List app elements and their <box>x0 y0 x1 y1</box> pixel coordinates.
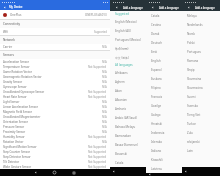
button[interactable]: Step Detector Sensor <box>0 154 110 159</box>
button[interactable]: Eesti <box>146 47 182 56</box>
staticText: Tieng Viet <box>187 113 201 117</box>
button[interactable]: Basaa (Kamerun) <box>110 140 146 149</box>
staticText: Not Supported <box>88 90 107 94</box>
staticText: Islenska <box>151 140 162 144</box>
button[interactable]: Cestina <box>146 20 182 29</box>
button[interactable]: Zulu <box>182 128 220 137</box>
button[interactable]: Significant Motion Sensor <box>0 144 110 149</box>
button[interactable]: Wifi <box>0 28 110 35</box>
button[interactable]: Filipino <box>146 83 182 92</box>
button[interactable]: Home <box>52 170 57 175</box>
button[interactable]: Proximity Sensor <box>0 129 110 134</box>
staticText: Temperature Sensor <box>3 65 30 69</box>
button[interactable]: Back <box>150 5 155 10</box>
button[interactable]: Indonesia <box>146 128 182 137</box>
button[interactable]: Uncalibrated Magnetometer <box>0 114 110 119</box>
button[interactable]: Akan <box>110 86 146 95</box>
button[interactable]: Romana <box>182 56 220 65</box>
button[interactable]: OnePlus <box>0 10 110 19</box>
button[interactable]: Back <box>33 170 38 175</box>
button[interactable]: Geomagnetic Rotation Vector <box>0 74 110 79</box>
button[interactable]: Svenska <box>182 101 220 110</box>
button[interactable]: Gravity Sensor <box>0 79 110 84</box>
button[interactable]: Portugues (Mexico) <box>110 35 146 44</box>
staticText: Humidity Sensor <box>3 135 25 139</box>
button[interactable]: Carrier <box>0 44 110 50</box>
button[interactable]: Hrvatski <box>146 119 182 128</box>
button[interactable]: Norsk <box>182 29 220 38</box>
button[interactable]: Bamanakan <box>110 131 146 140</box>
staticText: हिन्दी (भारत) <box>115 47 129 51</box>
staticText: Add a language <box>159 6 179 10</box>
button[interactable]: Magnetic Field Sensor <box>0 109 110 114</box>
staticText: srbijanski <box>187 140 200 144</box>
button[interactable]: Linear Acceleration Sensor <box>0 104 110 109</box>
button[interactable]: Heart Rate Sensor <box>0 94 110 99</box>
button[interactable]: Euskara <box>146 74 182 83</box>
button[interactable]: Recents <box>71 170 76 175</box>
button[interactable]: Dansk <box>146 29 182 38</box>
button[interactable]: Afrikaans <box>110 68 146 77</box>
button[interactable]: Catala <box>110 158 146 167</box>
button[interactable]: Amharic <box>110 104 146 113</box>
button[interactable]: Catala <box>146 11 182 20</box>
button[interactable]: Turkce <box>182 119 220 128</box>
button[interactable]: 中文 (简体) <box>110 53 146 62</box>
button[interactable]: Islenska <box>146 137 182 146</box>
button[interactable]: Galego <box>146 110 182 119</box>
button[interactable]: Back <box>147 173 152 176</box>
button[interactable]: English (Mexico) <box>110 17 146 26</box>
button[interactable]: Back <box>114 5 119 10</box>
button[interactable]: Step Counter Sensor <box>0 149 110 154</box>
button[interactable]: Acceleration Sensor <box>0 59 110 64</box>
button[interactable]: Kiswahili <box>146 155 182 164</box>
button[interactable]: Deutsch <box>146 38 182 47</box>
button[interactable]: Gaeilge <box>146 101 182 110</box>
button[interactable]: Albanian <box>110 95 146 104</box>
button[interactable]: Light Sensor <box>0 99 110 104</box>
button[interactable]: Rotation Vector <box>0 139 110 144</box>
button[interactable]: Temperature Sensor <box>0 64 110 69</box>
button[interactable]: Bahasa Melayu <box>110 122 146 131</box>
button[interactable]: Wake Gesture Sensor <box>0 164 110 169</box>
button[interactable]: Arabic (AR Saud) <box>110 113 146 122</box>
button[interactable]: Tilt Detector <box>0 159 110 164</box>
button[interactable]: Suomi <box>182 92 220 101</box>
button[interactable]: Latn <box>182 146 220 155</box>
button[interactable]: Orientation Sensor <box>0 119 110 124</box>
button[interactable]: Back <box>111 169 116 174</box>
button[interactable]: Francais <box>146 92 182 101</box>
staticText: N/A <box>102 80 107 84</box>
staticText: Rotation Vector <box>3 140 24 144</box>
staticText: Game Rotation Vector <box>3 70 32 74</box>
staticText: Dansk <box>151 32 160 36</box>
button[interactable]: Back <box>2 5 7 10</box>
button[interactable]: Melayu <box>182 11 220 20</box>
staticText: Polski <box>187 41 195 45</box>
button[interactable]: Game Rotation Vector <box>0 69 110 74</box>
button[interactable]: Aghem <box>110 77 146 86</box>
button[interactable]: Slovenscina <box>182 83 220 92</box>
button[interactable]: Humidity Sensor <box>0 134 110 139</box>
button[interactable]: English <box>146 56 182 65</box>
staticText: Bahasa Melayu <box>115 125 136 129</box>
button[interactable]: Back <box>183 169 188 174</box>
button[interactable]: Polski <box>182 38 220 47</box>
button[interactable]: Back <box>186 5 191 10</box>
button[interactable]: Latviesu <box>146 164 182 173</box>
staticText: OnePlus <box>10 13 22 17</box>
button[interactable]: srbijanski <box>182 137 220 146</box>
button[interactable]: Tieng Viet <box>182 110 220 119</box>
button[interactable]: Bosanski <box>110 149 146 158</box>
button[interactable]: Espanol <box>146 65 182 74</box>
button[interactable]: Pressure Sensor <box>0 124 110 129</box>
button[interactable]: Gyroscope Sensor <box>0 84 110 89</box>
button[interactable]: Shqip <box>182 65 220 74</box>
button[interactable]: Slovencina <box>182 74 220 83</box>
button[interactable]: हिन्दी (भारत) <box>110 44 146 53</box>
button[interactable]: Italiano <box>146 146 182 155</box>
button[interactable]: English (AU) <box>110 26 146 35</box>
button[interactable]: Uncalibrated Gyroscope Sensor <box>0 89 110 94</box>
button[interactable]: Portugues <box>182 47 220 56</box>
button[interactable]: Nederlands <box>182 20 220 29</box>
